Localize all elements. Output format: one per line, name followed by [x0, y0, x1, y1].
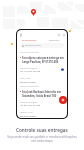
staticText: Encomendas	[22, 38, 37, 41]
staticText: Favoritos	[49, 38, 60, 41]
staticText: Goiandira, Goiás Brasil 760	[22, 94, 57, 98]
staticText: Seu objeto saiu para entrega em	[22, 56, 64, 60]
staticText: Rastrear objeto	[20, 115, 36, 118]
button[interactable]: Favoritos	[42, 38, 67, 41]
staticText: AB 123 456 789 BR	[20, 70, 41, 73]
staticText: CÓDIGO DO OBJETO	[20, 67, 38, 69]
button[interactable]: Encomendas	[17, 38, 42, 41]
staticText: Veja onde está seu pedido e receba notif…	[5, 135, 79, 143]
staticText: ÚLTIMA ATUALIZAÇÃO	[20, 51, 39, 53]
staticText: CÓDIGO DO OBJETO	[20, 101, 38, 103]
staticText: Controle suas entregas	[16, 127, 68, 133]
button[interactable]: Menu	[19, 33, 22, 36]
button[interactable]: Adicionar	[59, 96, 67, 104]
staticText: Hoje, 10:32	[20, 77, 31, 80]
button[interactable]: ÚLTIMA ATUALIZAÇÃO	[17, 85, 67, 118]
staticText: Rastrear objeto	[25, 44, 41, 47]
button[interactable]: Perfil	[62, 33, 65, 36]
staticText: Largo Paulista, SP 01310-000	[22, 60, 59, 64]
staticText: Seu José Barbosa Sobrinho em	[22, 90, 61, 94]
button[interactable]: Ligar	[61, 68, 64, 71]
staticText: ÚLTIMA ATUALIZAÇÃO	[20, 85, 39, 87]
staticText: Ontem, 18:10	[20, 111, 33, 114]
button[interactable]: Notificações	[57, 33, 60, 36]
staticText: CD 987 654 321 BR	[20, 104, 41, 107]
button[interactable]: Rastrear objeto	[20, 43, 64, 48]
staticText: Rastrear objeto	[20, 81, 36, 84]
button[interactable]: ÚLTIMA ATUALIZAÇÃO	[17, 51, 67, 84]
